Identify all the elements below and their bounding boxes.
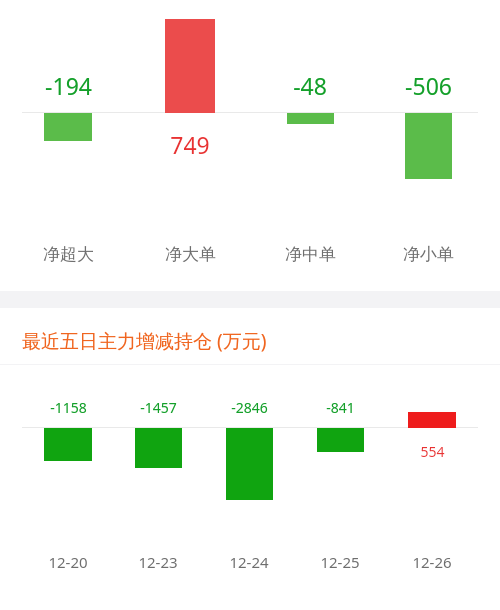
button[interactable]: 749 — [130, 129, 250, 159]
button[interactable]: 净大单 — [130, 241, 250, 267]
staticText: -841 — [326, 398, 355, 417]
staticText: 净小单 — [403, 244, 454, 265]
staticText: 净超大 — [43, 244, 94, 265]
staticText: 最近五日主力增减持仓 (万元) — [22, 328, 267, 354]
button[interactable]: 最近五日主力增减持仓 (万元) — [22, 327, 267, 355]
button[interactable]: -506 — [368, 70, 488, 100]
button[interactable]: 净超大 — [8, 241, 128, 267]
staticText: -506 — [405, 70, 452, 100]
button[interactable]: 12-20 — [8, 550, 128, 574]
button[interactable]: 554 — [372, 440, 492, 462]
button[interactable]: 12-23 — [98, 550, 218, 574]
staticText: 749 — [170, 129, 210, 159]
staticText: -1457 — [140, 398, 177, 417]
staticText: 12-20 — [48, 552, 88, 572]
staticText: -1158 — [50, 398, 87, 417]
staticText: 12-23 — [138, 552, 178, 572]
staticText: 12-24 — [229, 552, 269, 572]
staticText: -2846 — [231, 398, 268, 417]
button[interactable]: -841 — [280, 396, 400, 418]
button[interactable]: -2846 — [189, 396, 309, 418]
staticText: 净大单 — [165, 244, 216, 265]
staticText: 12-26 — [412, 552, 452, 572]
button[interactable]: -1158 — [8, 396, 128, 418]
button[interactable]: -194 — [8, 70, 128, 100]
staticText: 净中单 — [285, 244, 336, 265]
button[interactable]: 净中单 — [250, 241, 370, 267]
button[interactable]: 12-24 — [189, 550, 309, 574]
button[interactable]: 12-26 — [372, 550, 492, 574]
staticText: -194 — [45, 70, 92, 100]
staticText: 554 — [420, 442, 445, 461]
button[interactable]: -48 — [250, 70, 370, 100]
staticText: -48 — [293, 70, 327, 100]
button[interactable]: 12-25 — [280, 550, 400, 574]
button[interactable]: 净小单 — [368, 241, 488, 267]
staticText: 12-25 — [320, 552, 360, 572]
button[interactable]: -1457 — [98, 396, 218, 418]
